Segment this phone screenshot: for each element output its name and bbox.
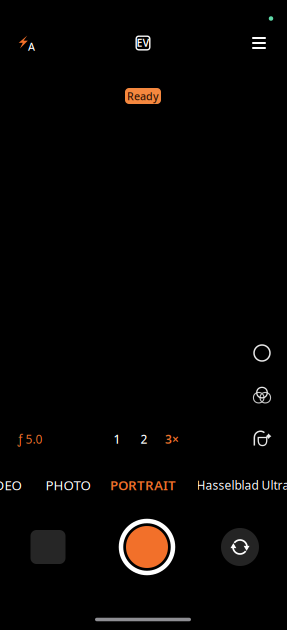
staticText: VIDEO [0,476,21,494]
button[interactable]: Switch camera [220,527,260,567]
staticText: PORTRAIT [110,476,176,494]
button[interactable]: Hasselblad Ultra [196,474,287,496]
button[interactable]: More settings [242,26,276,60]
staticText: Ready [127,89,159,103]
button[interactable]: Shutter [118,518,176,576]
staticText: 3× [165,431,179,447]
staticText: Hasselblad Ultra [196,477,287,493]
button[interactable]: PHOTO [45,474,90,496]
staticText: 1 [113,431,120,447]
staticText: PHOTO [45,476,90,494]
staticText: EV [136,35,149,50]
staticText: ƒ 5.0 [17,431,42,447]
button[interactable]: Filters [250,383,274,407]
staticText: 2 [140,431,147,447]
button[interactable]: PORTRAIT [110,474,176,496]
button[interactable]: Retouch [250,426,274,450]
button[interactable]: 3× [160,429,184,449]
button[interactable]: 2 [133,429,155,449]
staticText: A [28,39,35,54]
button[interactable]: Aperture [250,341,274,365]
button[interactable]: VIDEO [0,474,21,496]
button[interactable]: Gallery [30,530,65,564]
button[interactable]: Flash auto [9,26,45,60]
button[interactable]: 1 [106,429,128,449]
button[interactable]: Exposure compensation [126,26,160,60]
